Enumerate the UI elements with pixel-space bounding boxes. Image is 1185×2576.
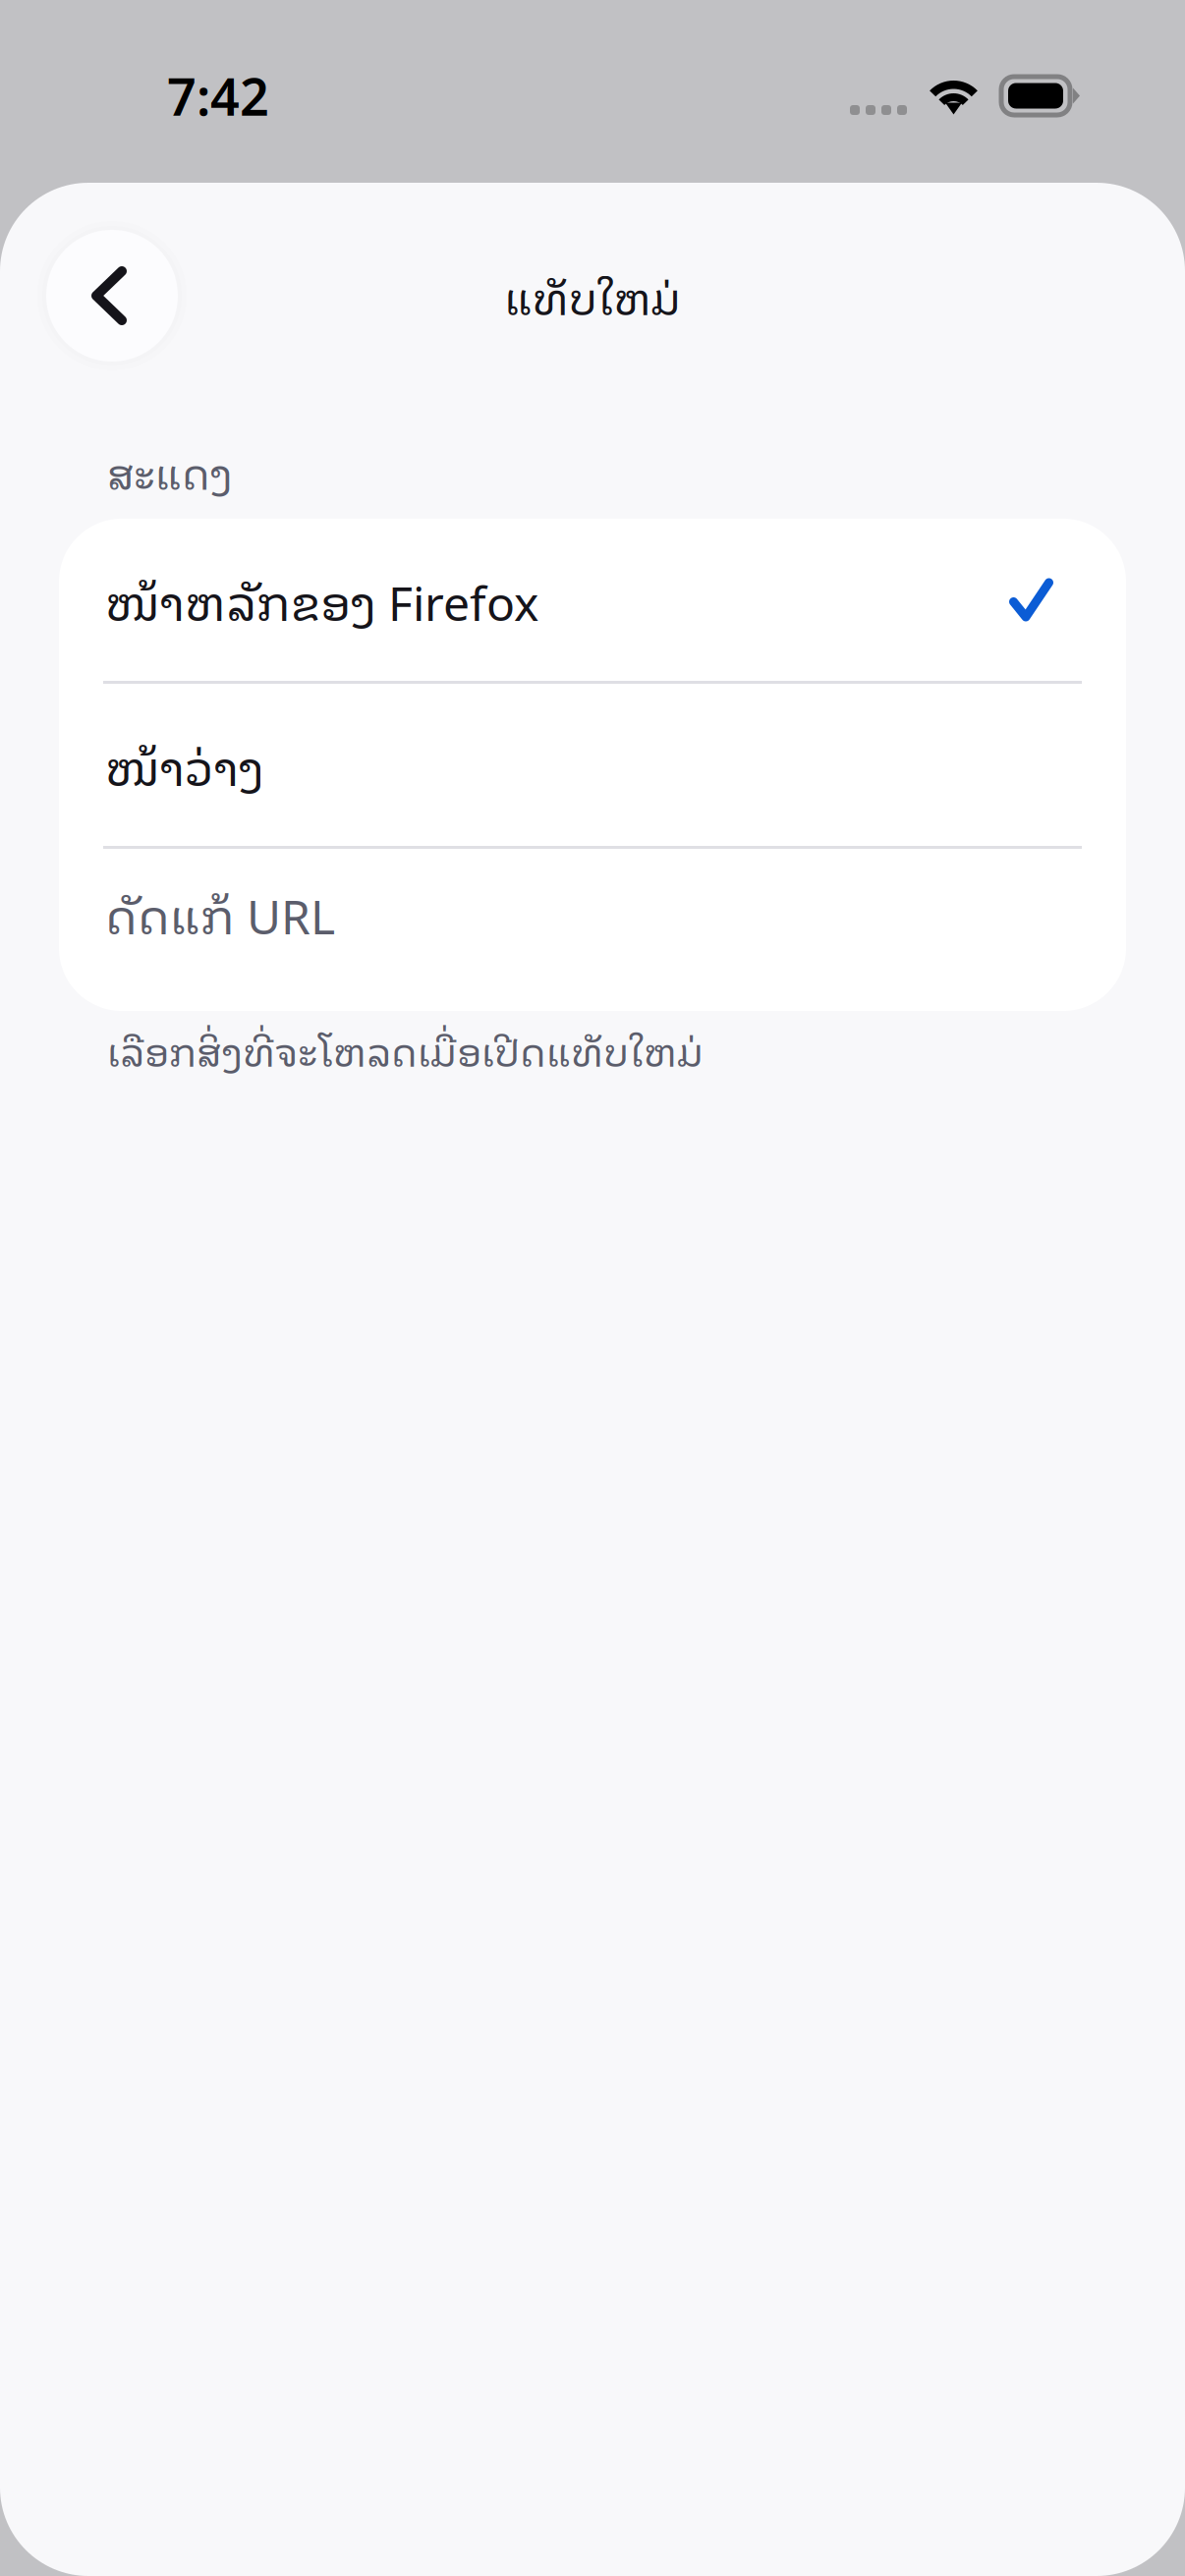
staticText: ດັດແກ້ URL — [105, 875, 335, 951]
staticText: ເລືອກສິ່ງທີ່ຈະໂຫລດເມື່ອເປີດແທັບໃຫມ່ — [107, 1019, 704, 1080]
button[interactable]: ໜ້າຫລັກຂອງ Firefox — [59, 519, 1126, 681]
staticText: ໜ້າວ່າງ — [105, 727, 264, 803]
staticText: 7:42 — [167, 62, 269, 130]
staticText: ແທັບໃຫມ່ — [505, 261, 680, 330]
staticText: ສະແດງ — [107, 438, 233, 504]
button[interactable]: ດັດແກ້ URL — [59, 849, 1126, 1011]
button[interactable]: Back — [33, 217, 191, 374]
staticText: ໜ້າຫລັກຂອງ Firefox — [105, 562, 538, 638]
button[interactable]: ໜ້າວ່າງ — [59, 684, 1126, 846]
